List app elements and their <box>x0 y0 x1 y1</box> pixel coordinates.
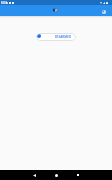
button[interactable]: DISARMED <box>36 33 76 41</box>
button[interactable]: Back <box>29 170 39 180</box>
button[interactable]: Recents <box>73 170 83 180</box>
button[interactable]: Home <box>51 170 61 180</box>
staticText: 8:04 <box>1 1 7 5</box>
staticText: DISARMED <box>55 35 72 39</box>
button[interactable]: Account <box>102 10 106 14</box>
button[interactable]: App logo <box>53 8 57 12</box>
